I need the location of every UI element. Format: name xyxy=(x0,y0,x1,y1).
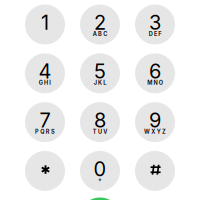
button[interactable]: 0 xyxy=(80,151,120,191)
staticText: + xyxy=(98,176,102,183)
staticText: 1 xyxy=(41,10,49,35)
staticText: WXYZ xyxy=(144,128,166,135)
staticText: 8 xyxy=(94,108,106,132)
button[interactable]: Pound xyxy=(135,151,175,191)
button[interactable]: 7 xyxy=(25,102,65,142)
staticText: PQRS xyxy=(35,128,55,135)
button[interactable]: 4 xyxy=(25,53,65,93)
button[interactable]: Star xyxy=(25,151,65,191)
staticText: 2 xyxy=(94,10,106,35)
button[interactable]: 8 xyxy=(80,102,120,142)
staticText: 5 xyxy=(94,59,106,83)
button[interactable]: 3 xyxy=(135,4,175,44)
staticText: JKL xyxy=(94,79,106,86)
staticText: 6 xyxy=(149,59,161,83)
staticText: 7 xyxy=(39,108,50,132)
button[interactable]: 5 xyxy=(80,53,120,93)
button[interactable]: 9 xyxy=(135,102,175,142)
staticText: GHI xyxy=(39,79,51,86)
staticText: 3 xyxy=(149,10,161,35)
button[interactable]: 1 xyxy=(25,4,65,44)
staticText: TUV xyxy=(93,128,107,135)
staticText: 9 xyxy=(149,108,161,132)
staticText: ABC xyxy=(93,31,107,37)
staticText: 0 xyxy=(93,157,106,181)
button[interactable]: 6 xyxy=(135,53,175,93)
button[interactable]: Call xyxy=(79,197,121,200)
button[interactable]: 2 xyxy=(80,4,120,44)
staticText: DEF xyxy=(149,31,161,37)
staticText: 4 xyxy=(38,59,51,83)
staticText: MNO xyxy=(147,79,163,86)
